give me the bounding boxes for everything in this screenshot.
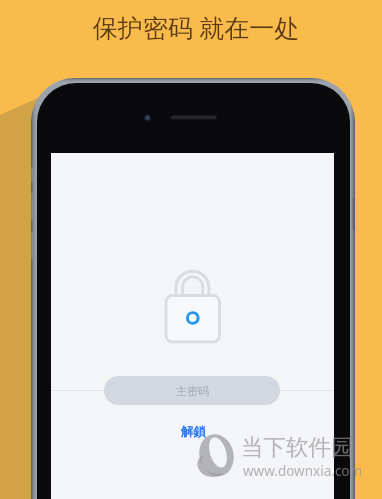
staticText: 解鎖: [181, 424, 206, 440]
staticText: 保护密码 就在一处: [5, 10, 382, 44]
button[interactable]: 解鎖: [177, 422, 210, 442]
other: Locked: [164, 268, 224, 348]
staticText: www.downxia.com: [243, 462, 363, 480]
button[interactable]: 主密码: [104, 376, 280, 405]
staticText: 当下软件园: [241, 433, 354, 461]
staticText: 主密码: [176, 384, 209, 398]
